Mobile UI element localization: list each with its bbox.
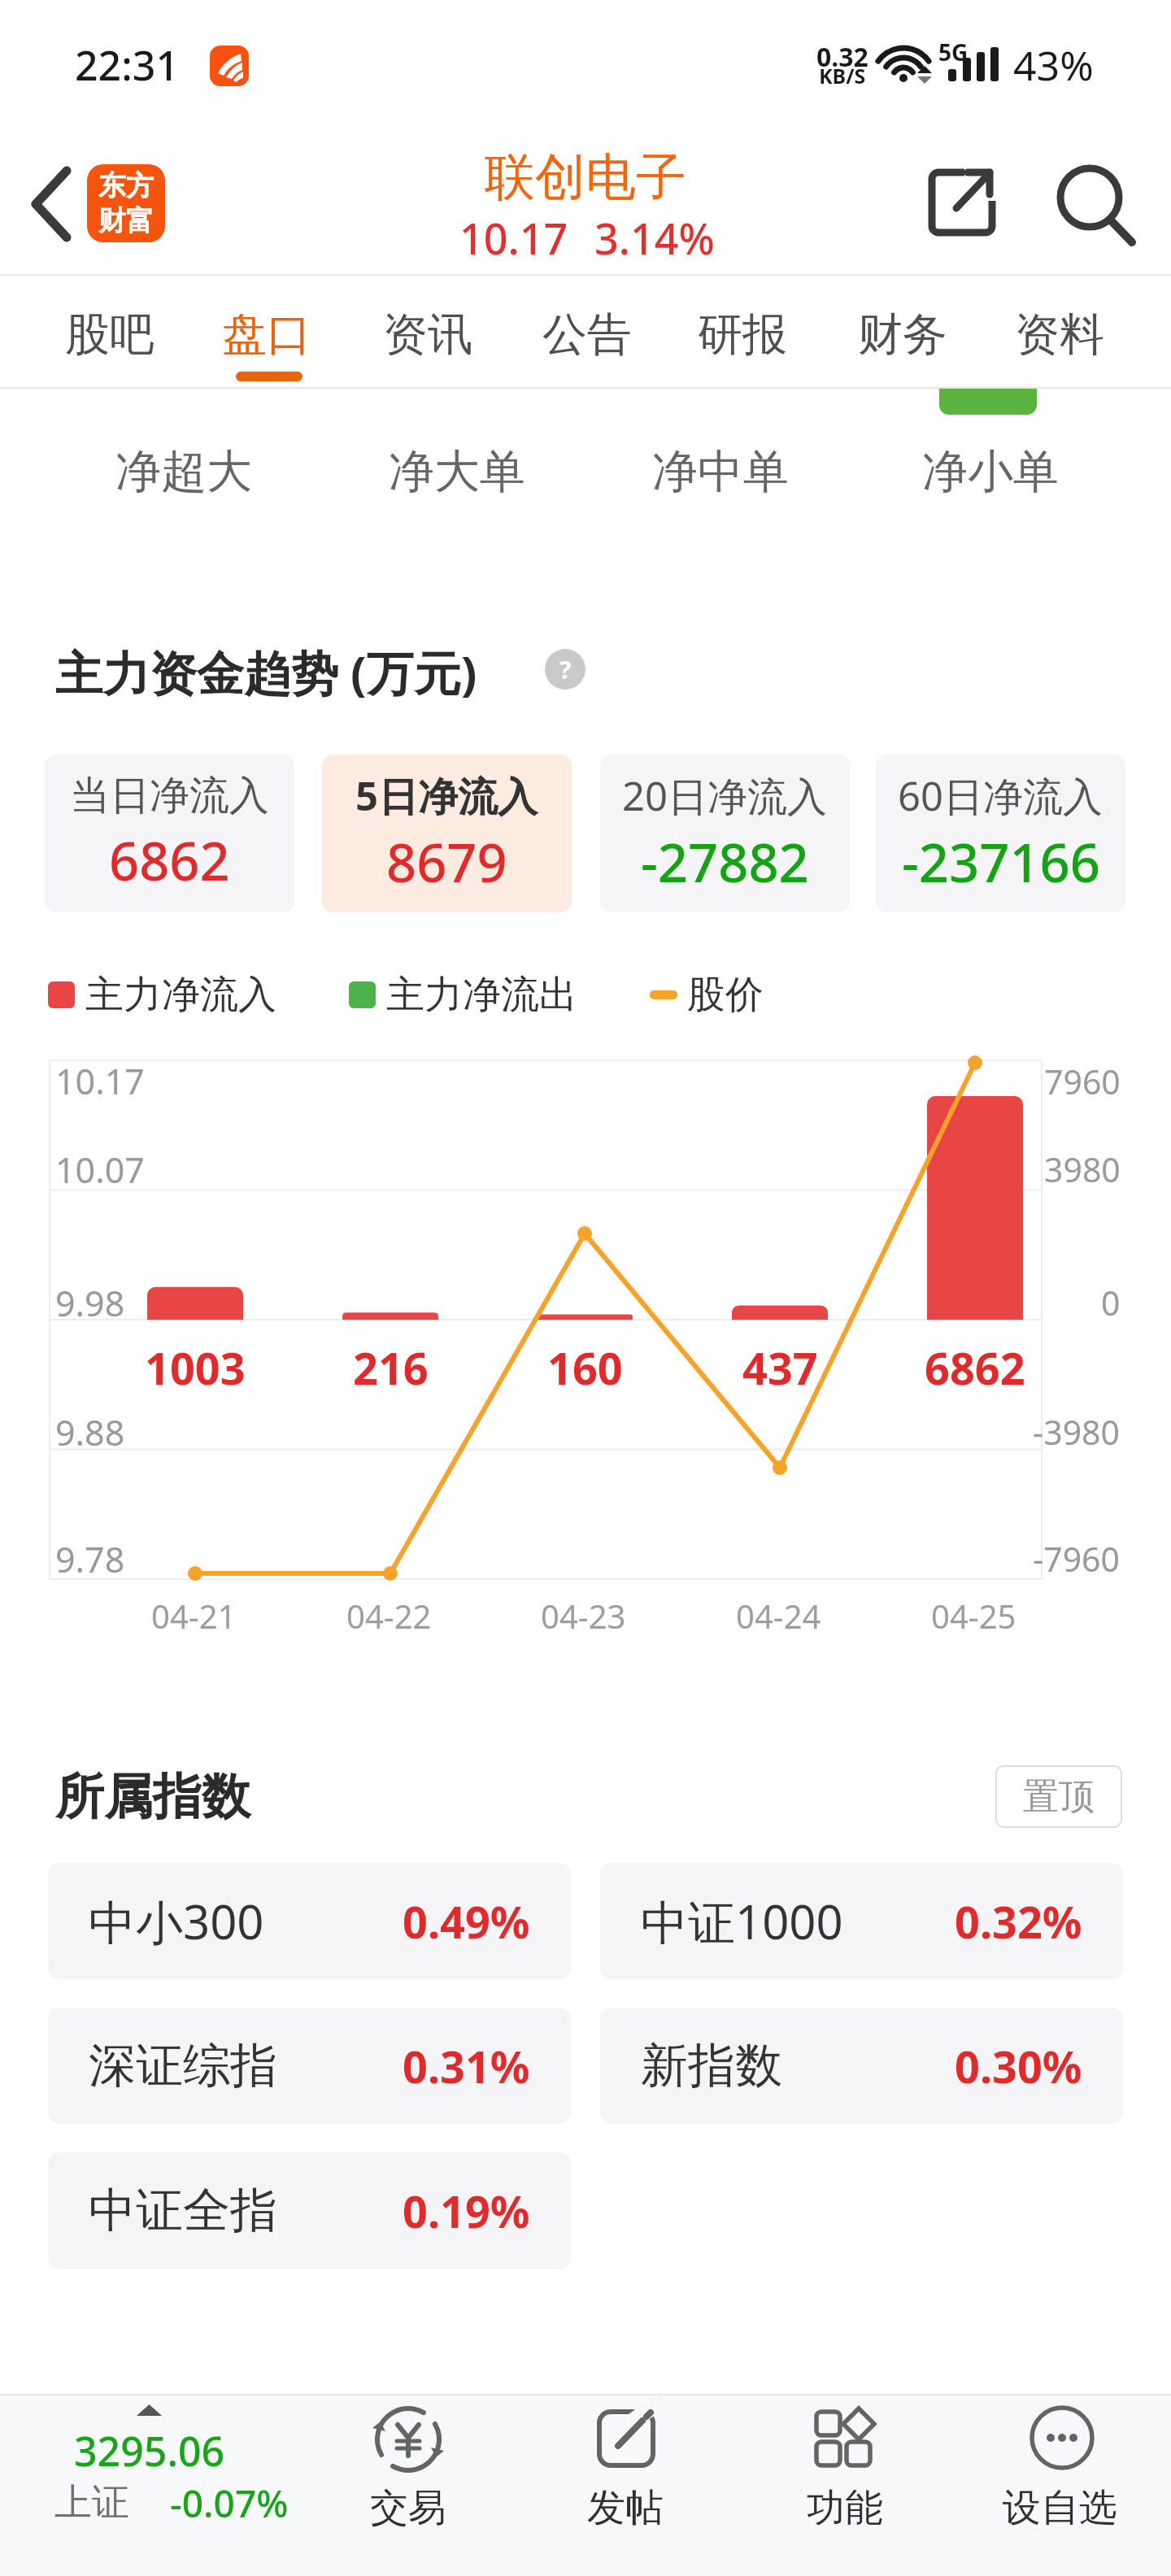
staticText: 04-22 (346, 1594, 432, 1638)
staticText: 10.07 (55, 1146, 145, 1194)
button[interactable] (16, 163, 89, 244)
button[interactable] (978, 2399, 1141, 2545)
staticText: 3295.06 (74, 2423, 225, 2478)
staticText: 资料 (1015, 307, 1104, 363)
staticText: 0.30% (955, 2036, 1082, 2096)
staticText: 东方 (98, 168, 154, 203)
staticText: 5日净流入 (355, 768, 538, 823)
staticText: 净小单 (922, 443, 1059, 501)
staticText: 3980 (1044, 1147, 1121, 1192)
staticText: 04-25 (931, 1594, 1016, 1638)
staticText: 上证 (54, 2479, 129, 2526)
button[interactable]: 公告 (510, 286, 664, 382)
staticText: -3980 (1033, 1409, 1121, 1455)
staticText: 9.98 (55, 1279, 125, 1327)
staticText: 7960 (1044, 1059, 1121, 1104)
staticText: -237166 (902, 826, 1100, 899)
staticText: 8679 (386, 826, 507, 899)
button[interactable] (327, 2399, 490, 2545)
staticText: ? (559, 653, 572, 686)
button[interactable]: 东方 (87, 164, 165, 242)
staticText: 437 (742, 1338, 818, 1398)
button[interactable]: 研报 (665, 286, 820, 382)
staticText: 发帖 (587, 2484, 664, 2532)
staticText: 设自选 (1003, 2484, 1117, 2532)
button[interactable]: 财务 (825, 286, 980, 382)
staticText: 160 (547, 1338, 623, 1398)
staticText: 联创电子 (485, 146, 686, 209)
staticText: 交易 (370, 2484, 446, 2532)
staticText: 主力资金趋势 (万元) (55, 640, 477, 704)
staticText: 财富 (98, 203, 154, 238)
staticText: 6862 (109, 825, 230, 897)
staticText: 22:31 (75, 37, 179, 93)
button[interactable]: 5日净流入 (322, 755, 572, 912)
staticText: 04-24 (736, 1594, 821, 1638)
button[interactable]: 中小300 (48, 1863, 571, 1979)
staticText: KB/S (819, 62, 866, 89)
staticText: -7960 (1033, 1536, 1121, 1582)
staticText: 主力净流入 (85, 971, 276, 1019)
staticText: 04-23 (541, 1594, 626, 1638)
button[interactable]: 资讯 (350, 286, 505, 382)
staticText: 当日净流入 (70, 771, 269, 821)
button[interactable] (544, 2399, 707, 2545)
staticText: 60日净流入 (898, 768, 1104, 823)
button[interactable]: 股吧 (33, 286, 187, 382)
staticText: 20日净流入 (622, 768, 828, 823)
button[interactable]: 当日净流入 (45, 755, 294, 912)
staticText: 中证全指 (89, 2181, 277, 2240)
staticText: 1003 (145, 1338, 246, 1398)
staticText: 0.49% (403, 1891, 530, 1952)
button[interactable]: 深证综指 (48, 2008, 571, 2124)
staticText: 0.32% (955, 1891, 1082, 1952)
staticText: 0.32 (816, 39, 868, 75)
staticText: -27882 (641, 826, 809, 899)
staticText: 5G (938, 37, 969, 67)
button[interactable]: 20日净流入 (600, 755, 850, 912)
button[interactable] (919, 167, 1004, 240)
staticText: 6862 (925, 1338, 1025, 1398)
staticText: 股吧 (65, 307, 155, 363)
staticText: 主力净流出 (386, 971, 577, 1019)
staticText: 净超大 (115, 443, 252, 501)
button[interactable] (1049, 163, 1143, 244)
staticText: 216 (353, 1338, 429, 1398)
staticText: 研报 (698, 307, 787, 363)
button[interactable]: 中证1000 (600, 1863, 1123, 1979)
staticText: 资讯 (383, 307, 472, 363)
button[interactable]: 60日净流入 (876, 755, 1125, 912)
staticText: 深证综指 (89, 2036, 277, 2095)
staticText: 中证1000 (641, 1889, 843, 1953)
staticText: 0 (1101, 1280, 1121, 1325)
staticText: 10.17 (459, 209, 568, 267)
button[interactable]: 中证全指 (48, 2152, 571, 2269)
staticText: 43% (1013, 37, 1094, 93)
button[interactable] (33, 2399, 309, 2537)
staticText: 盘口 (222, 307, 311, 363)
staticText: -0.07% (170, 2478, 289, 2529)
button[interactable]: 置顶 (995, 1765, 1122, 1828)
button[interactable]: 盘口 (189, 286, 344, 382)
staticText: 股价 (687, 971, 764, 1019)
staticText: 中小300 (89, 1889, 264, 1953)
staticText: 0.31% (403, 2036, 530, 2096)
staticText: 净中单 (652, 443, 789, 501)
button[interactable] (537, 642, 594, 699)
staticText: 9.78 (55, 1535, 125, 1583)
staticText: 置顶 (1023, 1774, 1095, 1819)
staticText: 公告 (542, 307, 632, 363)
staticText: 财务 (858, 307, 947, 363)
staticText: 10.17 (55, 1057, 145, 1105)
staticText: 0.19% (403, 2181, 530, 2241)
staticText: 净大单 (389, 443, 525, 501)
staticText: 04-21 (151, 1594, 237, 1638)
button[interactable]: 新指数 (600, 2008, 1123, 2124)
staticText: 3.14% (594, 209, 715, 267)
staticText: 9.88 (55, 1408, 125, 1456)
button[interactable] (764, 2399, 926, 2545)
staticText: 所属指数 (55, 1766, 250, 1828)
button[interactable]: 资料 (982, 286, 1137, 382)
staticText: 新指数 (641, 2036, 782, 2095)
staticText: 功能 (807, 2484, 883, 2532)
